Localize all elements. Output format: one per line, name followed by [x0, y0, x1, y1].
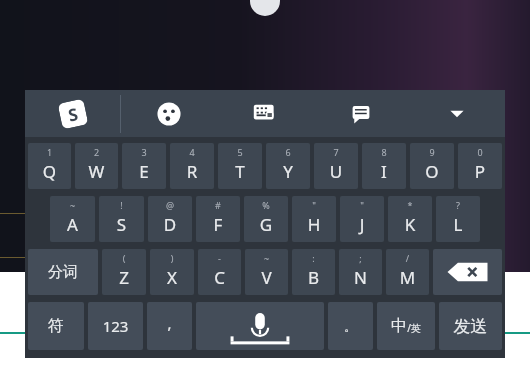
button[interactable]: /	[386, 249, 429, 295]
staticText: C	[198, 266, 241, 289]
button[interactable]: ?	[436, 196, 480, 242]
staticText: 1	[28, 146, 71, 158]
staticText: (	[102, 252, 146, 264]
button[interactable]: @	[148, 196, 192, 242]
staticText: 3	[122, 146, 166, 158]
staticText: 0	[458, 146, 502, 158]
button[interactable]: Sogou input method	[25, 90, 120, 137]
button[interactable]: 123	[88, 302, 143, 350]
staticText: U	[314, 160, 358, 183]
button[interactable]: 1	[28, 143, 71, 189]
staticText: ;	[339, 252, 382, 264]
staticText: N	[339, 266, 382, 289]
button[interactable]: (	[102, 249, 146, 295]
staticText: ,	[147, 313, 192, 333]
staticText: P	[458, 160, 502, 183]
button[interactable]: 9	[410, 143, 454, 189]
button[interactable]: 6	[266, 143, 310, 189]
button[interactable]: Emoji	[121, 90, 217, 137]
staticText: E	[122, 160, 166, 183]
staticText: 中	[391, 316, 407, 336]
staticText: A	[50, 213, 95, 236]
staticText: H	[292, 213, 336, 236]
button[interactable]: 5	[218, 143, 262, 189]
button[interactable]: 2	[75, 143, 118, 189]
button[interactable]: 发送	[439, 302, 502, 350]
button[interactable]: 7	[314, 143, 358, 189]
button[interactable]: 0	[458, 143, 502, 189]
staticText: 分词	[28, 263, 98, 282]
button[interactable]: Hide keyboard	[409, 90, 505, 137]
button[interactable]: ;	[339, 249, 382, 295]
staticText: Z	[102, 266, 146, 289]
staticText: S	[66, 102, 80, 127]
staticText: Y	[266, 160, 310, 183]
staticText: I	[362, 160, 406, 183]
button[interactable]: 。	[328, 302, 373, 350]
button[interactable]: Phrases	[313, 90, 409, 137]
button[interactable]: 3	[122, 143, 166, 189]
staticText: W	[75, 160, 118, 183]
button[interactable]: 中	[377, 302, 435, 350]
staticText: *	[388, 199, 432, 211]
staticText: 4	[170, 146, 214, 158]
staticText: %	[244, 199, 288, 211]
staticText: "	[340, 199, 384, 211]
button[interactable]: :	[292, 249, 335, 295]
staticText: /英	[407, 321, 421, 335]
staticText: )	[150, 252, 194, 264]
staticText: X	[150, 266, 194, 289]
button[interactable]: "	[292, 196, 336, 242]
staticText: J	[340, 213, 384, 236]
staticText: @	[148, 199, 192, 211]
staticText: 5	[218, 146, 262, 158]
staticText: R	[170, 160, 214, 183]
staticText: ~	[50, 199, 95, 211]
button[interactable]: ~	[245, 249, 288, 295]
staticText: ~	[245, 252, 288, 264]
staticText: K	[388, 213, 432, 236]
button[interactable]: Switch keyboard layout	[217, 90, 313, 137]
staticText: Q	[28, 160, 71, 183]
staticText: 6	[266, 146, 310, 158]
button[interactable]: Space, voice input	[196, 302, 324, 350]
staticText: S	[99, 213, 144, 236]
staticText: 符	[28, 316, 84, 336]
staticText: :	[292, 252, 335, 264]
staticText: O	[410, 160, 454, 183]
staticText: #	[196, 199, 240, 211]
button[interactable]: "	[340, 196, 384, 242]
staticText: G	[244, 213, 288, 236]
button[interactable]: 符	[28, 302, 84, 350]
staticText: /	[386, 252, 429, 264]
staticText: D	[148, 213, 192, 236]
staticText: 8	[362, 146, 406, 158]
button[interactable]: 8	[362, 143, 406, 189]
button[interactable]: Backspace	[433, 249, 502, 295]
button[interactable]: %	[244, 196, 288, 242]
button[interactable]: ,	[147, 302, 192, 350]
button[interactable]: 分词	[28, 249, 98, 295]
staticText: 9	[410, 146, 454, 158]
staticText: -	[198, 252, 241, 264]
staticText: B	[292, 266, 335, 289]
button[interactable]: *	[388, 196, 432, 242]
staticText: 7	[314, 146, 358, 158]
staticText: 发送	[439, 316, 502, 337]
staticText: F	[196, 213, 240, 236]
staticText: "	[292, 199, 336, 211]
button[interactable]: !	[99, 196, 144, 242]
staticText: !	[99, 199, 144, 211]
staticText: ?	[436, 199, 480, 211]
button[interactable]: )	[150, 249, 194, 295]
staticText: M	[386, 266, 429, 289]
staticText: V	[245, 266, 288, 289]
button[interactable]: #	[196, 196, 240, 242]
staticText: 。	[328, 318, 373, 334]
staticText: 2	[75, 146, 118, 158]
staticText: 123	[88, 316, 143, 336]
button[interactable]: 4	[170, 143, 214, 189]
staticText: L	[436, 213, 480, 236]
button[interactable]: ~	[50, 196, 95, 242]
button[interactable]: -	[198, 249, 241, 295]
